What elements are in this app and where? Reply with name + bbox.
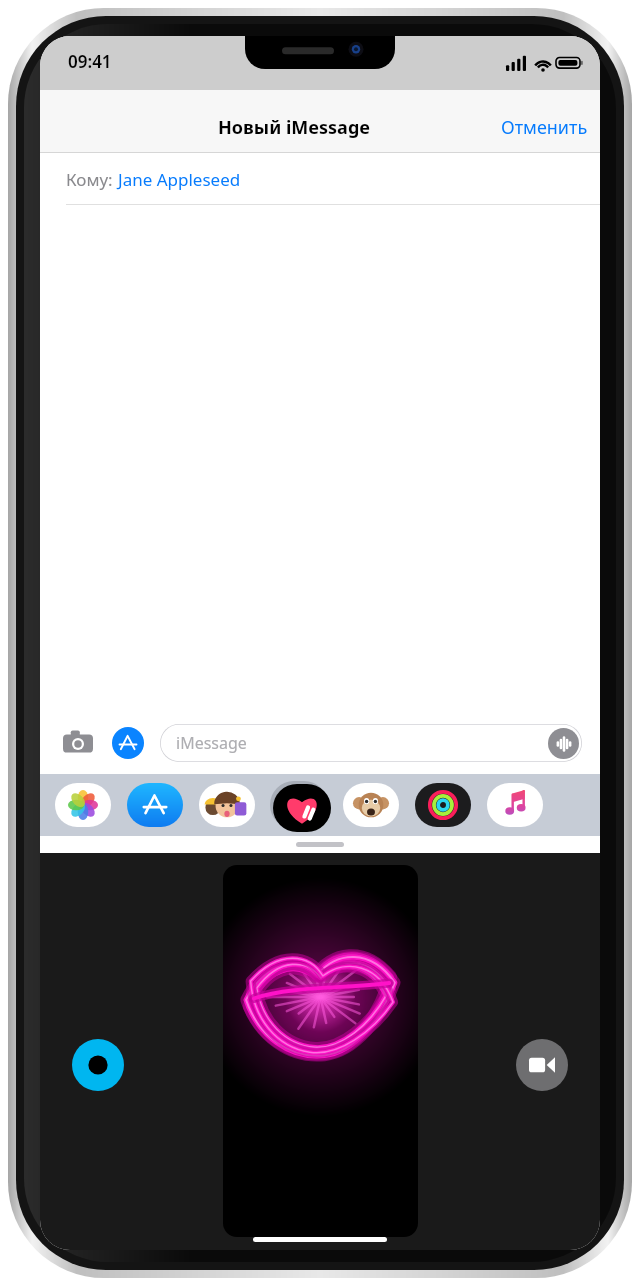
button[interactable]: App Store (108, 723, 148, 763)
staticText: Отменить (501, 115, 588, 140)
button[interactable]: iMessage (160, 724, 582, 762)
button[interactable]: Photos (54, 782, 112, 828)
button[interactable]: Отменить (489, 107, 600, 148)
button[interactable]: Music (486, 782, 544, 828)
button[interactable]: Memoji (198, 782, 256, 828)
button[interactable]: Drag handle (296, 842, 344, 847)
button[interactable]: Camera (58, 723, 98, 763)
button[interactable]: Animoji (342, 782, 400, 828)
staticText: Jane Appleseed (118, 168, 241, 191)
button[interactable]: Digital Touch canvas (223, 865, 418, 1237)
staticText: Кому: (66, 168, 118, 191)
staticText: 09:41 (68, 50, 112, 73)
button[interactable]: Activity (414, 782, 472, 828)
button[interactable]: Record audio (548, 728, 579, 759)
button[interactable]: Digital Touch (270, 780, 328, 830)
button[interactable]: Кому: (40, 153, 600, 205)
staticText: iMessage (176, 732, 247, 754)
staticText: Новый iMessage (218, 115, 371, 140)
button[interactable]: App Store (126, 782, 184, 828)
button[interactable]: Color picker (72, 1039, 124, 1091)
button[interactable]: Record video (516, 1039, 568, 1091)
